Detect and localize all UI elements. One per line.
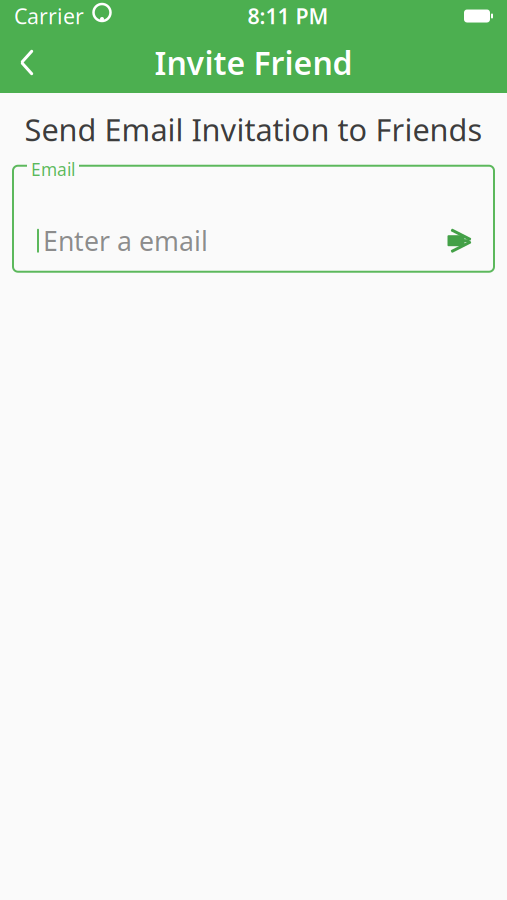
staticText: Send Email Invitation to Friends: [24, 109, 482, 150]
staticText: Enter a email: [43, 223, 208, 258]
staticText: Email: [31, 158, 75, 181]
button[interactable]: Send invitation: [438, 219, 482, 263]
button[interactable]: Back: [0, 35, 54, 89]
staticText: Invite Friend: [154, 41, 352, 84]
staticText: 8:11 PM: [247, 2, 328, 30]
staticText: Carrier: [14, 2, 84, 30]
